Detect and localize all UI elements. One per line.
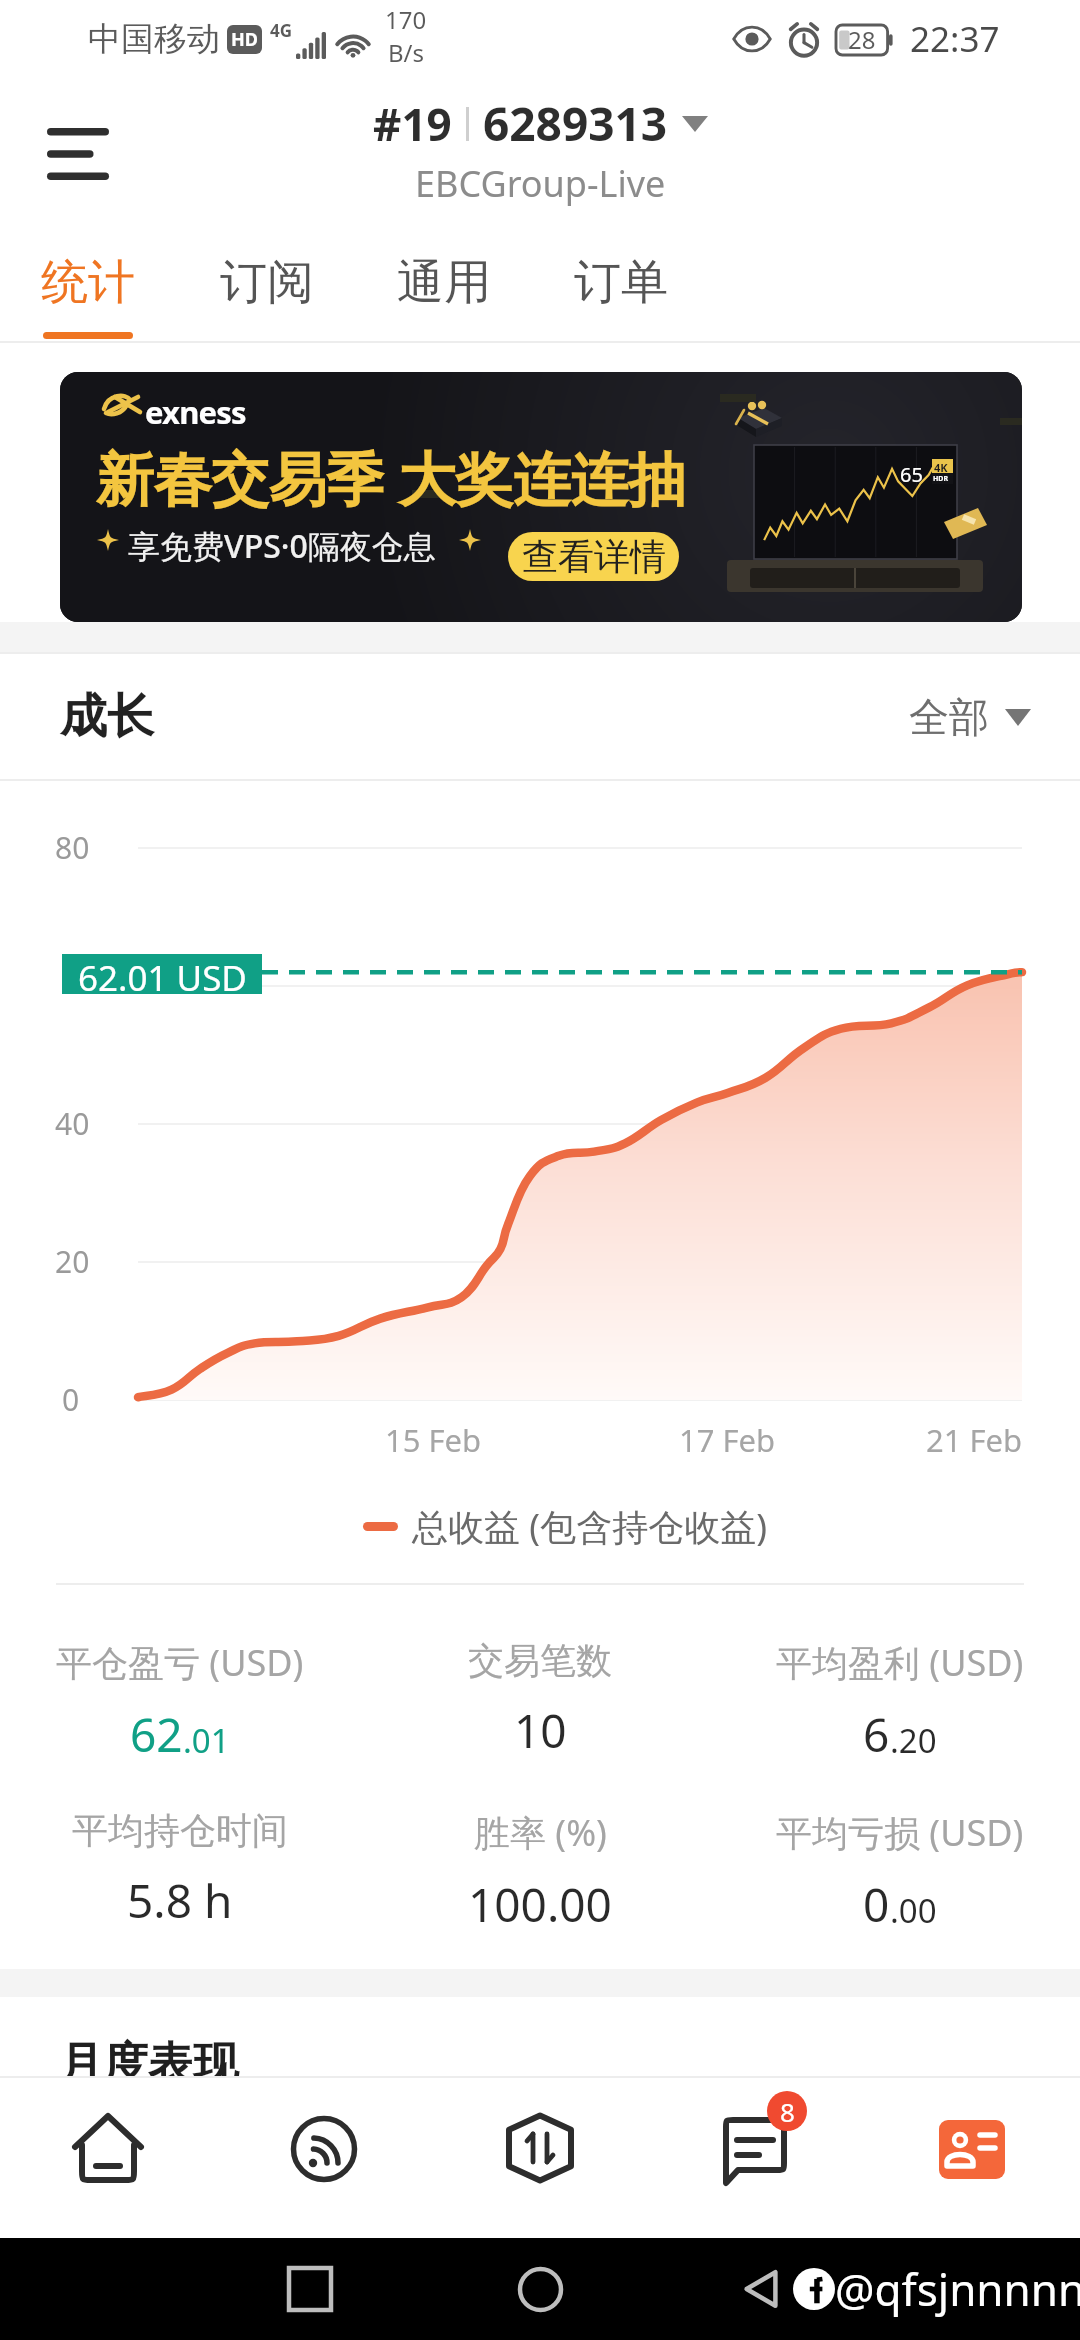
staticText: 5.8 h xyxy=(127,1869,233,1932)
staticText: .20 xyxy=(890,1718,937,1763)
button[interactable]: 订单 xyxy=(550,230,692,342)
staticText: #19 xyxy=(373,94,452,154)
button[interactable]: 通用 xyxy=(373,230,515,342)
staticText: 65 xyxy=(900,461,923,488)
staticText: 17 Feb xyxy=(679,1419,776,1461)
button[interactable]: Home xyxy=(517,2266,564,2313)
staticText: 平仓盈亏 (USD) xyxy=(56,1638,304,1687)
staticText: 订阅 xyxy=(220,253,314,312)
button[interactable]: Back xyxy=(737,2265,785,2313)
button[interactable]: Signals xyxy=(216,2076,432,2238)
staticText: 0 xyxy=(62,1379,80,1420)
staticText: 20 xyxy=(55,1241,90,1282)
button[interactable]: Trade xyxy=(432,2076,648,2238)
staticText: HDR xyxy=(933,474,949,484)
staticText: 成长 xyxy=(60,687,154,746)
staticText: 统计 xyxy=(41,253,135,312)
staticText: 62.01 USD xyxy=(78,954,247,994)
staticText: 0 xyxy=(863,1873,890,1936)
staticText: 交易笔数 xyxy=(468,1638,612,1683)
button[interactable]: 全部 xyxy=(909,692,1031,742)
staticText: 总收益 (包含持仓收益) xyxy=(412,1502,767,1551)
staticText: 享免费VPS·0隔夜仓息 xyxy=(128,524,436,568)
button[interactable]: Menu xyxy=(20,96,136,212)
button[interactable]: Home xyxy=(0,2076,216,2238)
staticText: 全部 xyxy=(909,692,989,742)
staticText: 28 xyxy=(848,23,876,56)
staticText: 10 xyxy=(514,1699,567,1762)
staticText: .00 xyxy=(890,1888,937,1933)
button[interactable]: exness xyxy=(60,372,1022,622)
staticText: EBCGroup-Live xyxy=(415,159,666,208)
staticText: 170 xyxy=(385,3,427,36)
staticText: 40 xyxy=(55,1103,90,1144)
staticText: 平均亏损 (USD) xyxy=(776,1808,1024,1857)
staticText: @qfsjnnnnn xyxy=(835,2259,1080,2319)
staticText: 80 xyxy=(55,827,90,868)
staticText: .01 xyxy=(183,1718,230,1763)
staticText: 4G xyxy=(270,19,293,42)
staticText: 15 Feb xyxy=(385,1419,482,1461)
staticText: 订单 xyxy=(574,253,668,312)
button[interactable]: 订阅 xyxy=(196,230,338,342)
staticText: 22:37 xyxy=(910,15,1000,63)
staticText: 通用 xyxy=(397,253,491,312)
staticText: 中国移动 xyxy=(88,18,220,60)
staticText: 6 xyxy=(863,1703,890,1766)
staticText: 6289313 xyxy=(483,92,668,155)
staticText: 平均盈利 (USD) xyxy=(776,1638,1024,1687)
staticText: 8 xyxy=(780,2094,795,2129)
staticText: 新春交易季 大奖连连抽 xyxy=(96,438,686,517)
button[interactable]: 统计 xyxy=(17,230,159,342)
staticText: 100.00 xyxy=(468,1873,612,1936)
staticText: 4K xyxy=(934,460,948,475)
staticText: 查看详情 xyxy=(522,534,666,579)
staticText: 月度表现 xyxy=(58,2036,238,2093)
button[interactable]: Messages xyxy=(648,2076,864,2238)
staticText: B/s xyxy=(388,36,425,69)
staticText: exness xyxy=(145,391,246,433)
button[interactable]: #19 xyxy=(373,92,708,208)
staticText: 21 Feb xyxy=(926,1419,1023,1461)
staticText: 胜率 (%) xyxy=(474,1808,607,1857)
staticText: 62 xyxy=(130,1703,183,1766)
button[interactable]: Account xyxy=(864,2076,1080,2238)
staticText: HD xyxy=(231,27,258,52)
button[interactable]: Recents xyxy=(289,2268,331,2310)
staticText: 平均持仓时间 xyxy=(72,1808,288,1853)
